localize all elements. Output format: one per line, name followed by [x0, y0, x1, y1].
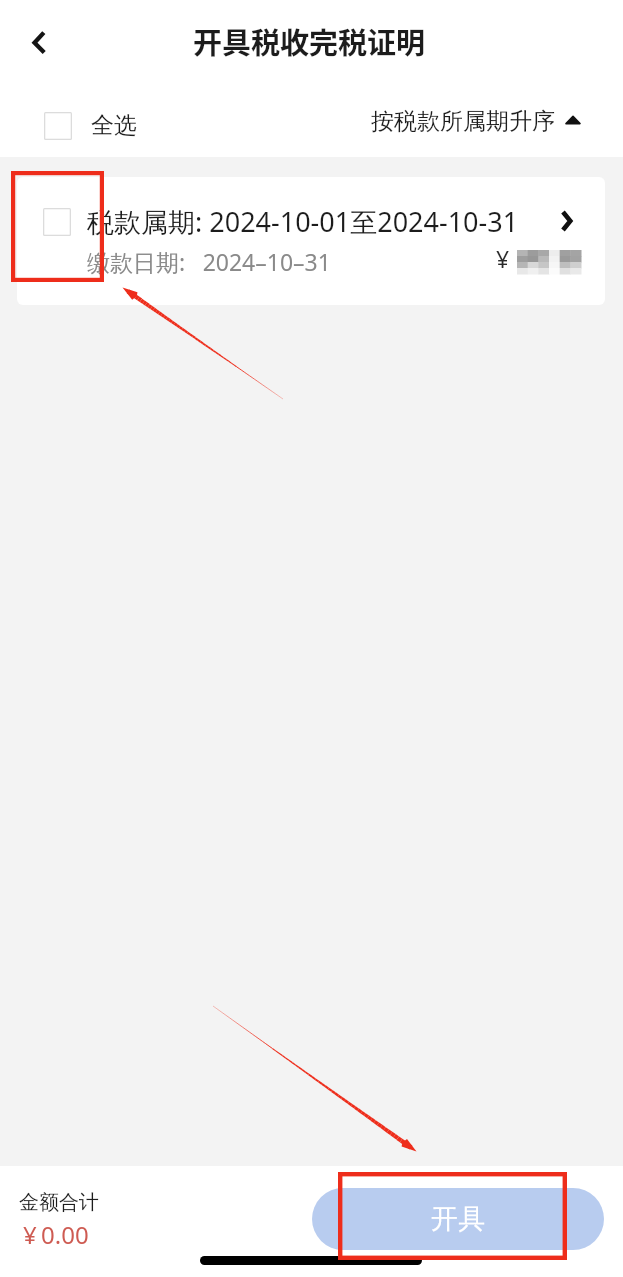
button[interactable]: 开具 [312, 1188, 604, 1250]
button[interactable]: View details [547, 199, 587, 239]
button[interactable]: 按税款所属期升序 [371, 107, 580, 136]
staticText: 金额合计 [19, 1190, 99, 1215]
staticText: 按税款所属期升序 [371, 107, 555, 136]
staticText: 开具税收完税证明 [193, 20, 426, 62]
staticText: ¥ [496, 243, 510, 274]
staticText: 0.00 [41, 1218, 89, 1251]
button[interactable]: 税款属期: 2024-10-01至2024-10-31 [17, 177, 605, 305]
staticText: ¥ [23, 1218, 37, 1251]
staticText: 缴款日期: 2024–10–31 [87, 246, 331, 277]
staticText: 全选 [91, 111, 137, 140]
staticText: 税款属期: 2024-10-01至2024-10-31 [87, 203, 519, 240]
button[interactable]: Back [14, 25, 51, 62]
staticText: 开具 [431, 1202, 485, 1236]
button[interactable]: 全选 [44, 111, 137, 140]
